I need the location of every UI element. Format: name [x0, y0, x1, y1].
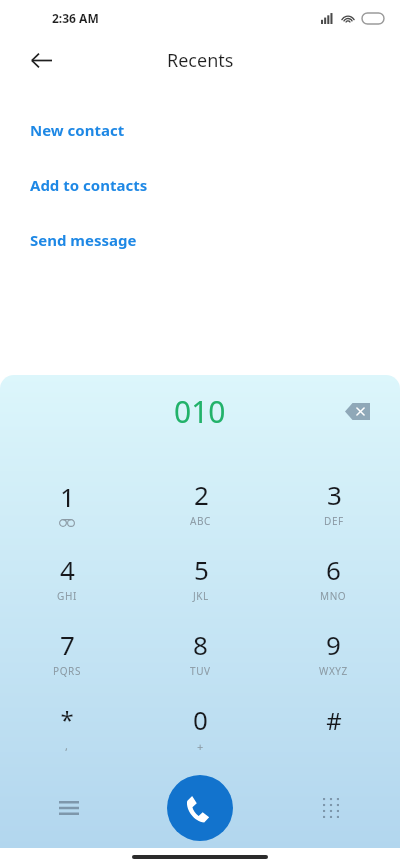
staticText: #	[326, 704, 342, 737]
staticText: 0	[193, 702, 208, 737]
button[interactable]: 9	[267, 617, 400, 692]
button[interactable]: More options	[48, 787, 90, 829]
button[interactable]: 8	[134, 617, 267, 692]
button[interactable]: Keypad	[310, 787, 352, 829]
button[interactable]: 4	[0, 542, 134, 617]
staticText: 2	[194, 477, 209, 512]
staticText: 7	[60, 627, 75, 662]
button[interactable]: 7	[0, 617, 134, 692]
staticText: ,	[65, 738, 69, 753]
staticText: 2:36 AM	[52, 10, 99, 26]
button[interactable]: Add to contacts	[0, 157, 400, 212]
staticText: GHI	[57, 589, 77, 603]
staticText: New contact	[30, 120, 125, 140]
button[interactable]: Backspace	[338, 392, 376, 430]
button[interactable]: Back	[22, 41, 60, 79]
staticText: +	[197, 739, 204, 754]
staticText: 6	[326, 552, 341, 587]
button[interactable]: 3	[267, 467, 400, 542]
staticText: 5	[194, 552, 209, 587]
button[interactable]: #	[267, 692, 400, 767]
staticText: 8	[193, 627, 208, 662]
button[interactable]: Call	[167, 775, 233, 841]
staticText: *	[60, 703, 74, 736]
staticText: 010	[174, 391, 226, 432]
staticText: Recents	[167, 48, 234, 73]
staticText: 9	[326, 627, 341, 662]
button[interactable]: 0	[134, 692, 267, 767]
staticText: MNO	[320, 589, 347, 603]
button[interactable]: 1	[0, 467, 134, 542]
button[interactable]: *	[0, 692, 134, 767]
staticText: 3	[327, 477, 342, 512]
staticText: DEF	[324, 514, 344, 528]
staticText: 1	[60, 479, 75, 514]
staticText: TUV	[190, 664, 211, 678]
staticText: WXYZ	[319, 664, 348, 678]
staticText: PQRS	[53, 664, 81, 678]
staticText: Send message	[30, 230, 137, 250]
staticText: JKL	[193, 589, 209, 603]
button[interactable]: 6	[267, 542, 400, 617]
button[interactable]: 5	[134, 542, 267, 617]
staticText: 4	[60, 552, 75, 587]
staticText: Add to contacts	[30, 175, 148, 195]
button[interactable]: New contact	[0, 102, 400, 157]
staticText: ABC	[190, 514, 212, 528]
button[interactable]: 2	[134, 467, 267, 542]
button[interactable]: Send message	[0, 212, 400, 267]
